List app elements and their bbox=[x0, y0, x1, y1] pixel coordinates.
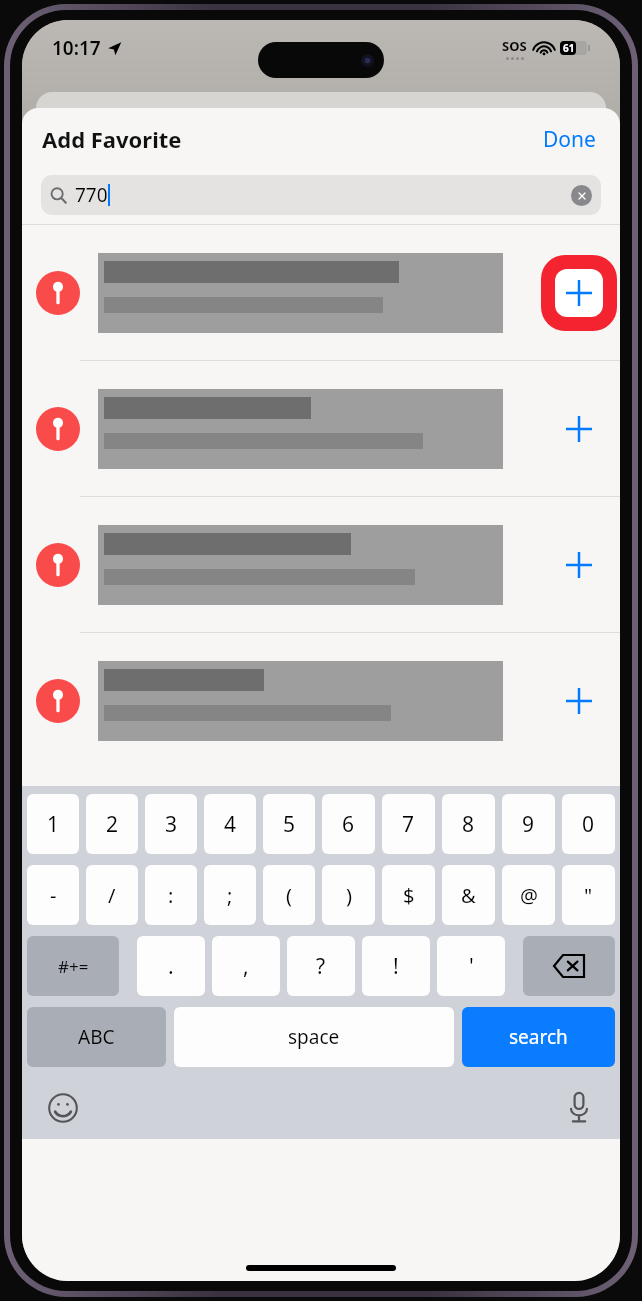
staticText: 9 bbox=[522, 810, 535, 839]
button[interactable]: @ bbox=[502, 865, 555, 925]
staticText: ) bbox=[346, 882, 352, 909]
button[interactable]: Done bbox=[539, 119, 600, 160]
button[interactable]: 4 bbox=[204, 794, 256, 854]
button[interactable]: ABC bbox=[27, 1007, 166, 1067]
staticText: space bbox=[288, 1024, 340, 1050]
button[interactable]: . bbox=[137, 936, 205, 996]
staticText: 3 bbox=[165, 810, 178, 839]
button[interactable]: " bbox=[562, 865, 615, 925]
button[interactable]: 9 bbox=[502, 794, 555, 854]
button[interactable]: Add to favorites bbox=[22, 497, 620, 632]
staticText: SOS bbox=[502, 37, 527, 55]
button[interactable]: , bbox=[212, 936, 280, 996]
staticText: ; bbox=[227, 882, 233, 909]
staticText: : bbox=[168, 882, 174, 909]
button[interactable]: 6 bbox=[322, 794, 375, 854]
button[interactable]: Add to favorites bbox=[538, 225, 620, 360]
staticText: 0 bbox=[582, 810, 595, 839]
staticText: . bbox=[168, 952, 174, 981]
staticText: Done bbox=[543, 125, 596, 154]
button[interactable]: 1 bbox=[27, 794, 79, 854]
button[interactable]: ' bbox=[437, 936, 505, 996]
button[interactable]: & bbox=[442, 865, 495, 925]
staticText: ! bbox=[393, 952, 399, 981]
staticText: 6 bbox=[342, 810, 355, 839]
button[interactable]: $ bbox=[382, 865, 435, 925]
staticText: ( bbox=[286, 882, 292, 909]
staticText: #+= bbox=[58, 955, 89, 978]
staticText: 8 bbox=[462, 810, 475, 839]
button[interactable]: 0 bbox=[562, 794, 615, 854]
button[interactable]: ( bbox=[263, 865, 315, 925]
button[interactable]: ; bbox=[204, 865, 256, 925]
button[interactable]: Add to favorites bbox=[22, 361, 620, 496]
button[interactable]: Clear text bbox=[571, 185, 592, 206]
button[interactable]: search bbox=[462, 1007, 615, 1067]
button[interactable]: space bbox=[174, 1007, 454, 1067]
staticText: 2 bbox=[106, 810, 119, 839]
button[interactable]: Add to favorites bbox=[22, 225, 620, 360]
button[interactable]: 7 bbox=[382, 794, 435, 854]
staticText: 7 bbox=[402, 810, 415, 839]
staticText: 5 bbox=[283, 810, 296, 839]
staticText: - bbox=[50, 882, 57, 909]
staticText: 4 bbox=[224, 810, 237, 839]
button[interactable]: Add to favorites bbox=[538, 361, 620, 496]
button[interactable]: ! bbox=[362, 936, 430, 996]
button[interactable]: Add to favorites bbox=[538, 497, 620, 632]
staticText: search bbox=[509, 1024, 568, 1050]
staticText: & bbox=[461, 882, 476, 909]
staticText: Add Favorite bbox=[42, 124, 182, 154]
staticText: 770 bbox=[75, 182, 108, 208]
staticText: $ bbox=[403, 882, 415, 909]
staticText: ABC bbox=[78, 1024, 115, 1050]
button[interactable]: 3 bbox=[145, 794, 197, 854]
button[interactable]: Delete bbox=[523, 936, 615, 996]
staticText: ' bbox=[469, 952, 474, 981]
button[interactable]: #+= bbox=[27, 936, 119, 996]
staticText: , bbox=[243, 952, 249, 981]
button[interactable]: / bbox=[86, 865, 138, 925]
button[interactable]: : bbox=[145, 865, 197, 925]
staticText: 61 bbox=[563, 41, 575, 55]
staticText: 1 bbox=[47, 810, 60, 839]
staticText: ? bbox=[316, 952, 326, 981]
button[interactable]: 2 bbox=[86, 794, 138, 854]
button[interactable]: 770 bbox=[41, 175, 601, 215]
staticText: 10:17 bbox=[52, 35, 101, 61]
button[interactable]: ? bbox=[287, 936, 355, 996]
staticText: @ bbox=[520, 882, 538, 909]
button[interactable]: Emoji keyboard bbox=[44, 1089, 82, 1127]
button[interactable]: ) bbox=[322, 865, 375, 925]
button[interactable]: Add to favorites bbox=[22, 633, 620, 768]
button[interactable]: Dictation bbox=[560, 1089, 598, 1127]
staticText: " bbox=[584, 882, 593, 909]
button[interactable]: Add to favorites bbox=[538, 633, 620, 768]
button[interactable]: 5 bbox=[263, 794, 315, 854]
staticText: / bbox=[108, 882, 116, 909]
button[interactable]: 8 bbox=[442, 794, 495, 854]
button[interactable]: - bbox=[27, 865, 79, 925]
